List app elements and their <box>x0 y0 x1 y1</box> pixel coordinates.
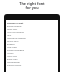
staticText: Raleway <box>7 43 15 46</box>
button[interactable]: Noto Sans Display <box>6 31 58 34</box>
staticText: Inter Tight <box>7 46 17 49</box>
staticText: The right font for you <box>0 1 64 10</box>
staticText: Rubik Light <box>7 58 18 61</box>
staticText: Lato <box>7 34 12 37</box>
staticText: Playfair Display <box>7 64 22 67</box>
staticText: Nunito <box>7 52 14 55</box>
staticText: Merriweather <box>7 61 20 64</box>
button[interactable]: Source Sans <box>6 40 58 43</box>
button[interactable]: Playfair Display <box>6 64 58 67</box>
staticText: Open Sans <box>7 28 18 31</box>
staticText: Noto Sans Display <box>7 31 24 34</box>
button[interactable]: Inter Tight <box>6 46 58 49</box>
button[interactable]: Work Sans <box>6 55 58 58</box>
staticText: Poppins SemiBold <box>7 49 24 52</box>
button[interactable]: Nunito <box>6 52 58 55</box>
button[interactable]: Merriweather <box>6 61 58 64</box>
button[interactable]: Open Sans <box>6 28 58 31</box>
button[interactable]: Montserrat Medium <box>6 37 58 40</box>
button[interactable]: Roboto Regular <box>6 25 58 28</box>
button[interactable]: Lato <box>6 34 58 37</box>
staticText: Work Sans <box>7 55 17 58</box>
staticText: Choose a font <box>7 21 24 24</box>
button[interactable]: Raleway <box>6 43 58 46</box>
staticText: Montserrat Medium <box>7 37 26 40</box>
button[interactable]: Poppins SemiBold <box>6 49 58 52</box>
button[interactable]: Rubik Light <box>6 58 58 61</box>
staticText: Source Sans <box>7 40 19 43</box>
staticText: Roboto Regular <box>7 25 22 28</box>
